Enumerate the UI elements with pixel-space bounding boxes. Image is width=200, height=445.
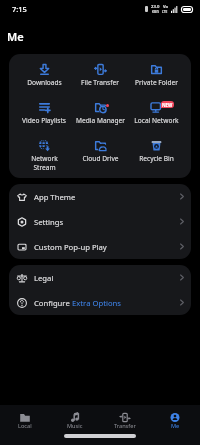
button[interactable]: Legal	[9, 265, 191, 290]
button[interactable]: Transfer	[100, 405, 150, 430]
button[interactable]: Video Playlists	[16, 102, 72, 140]
staticText: Transfer	[114, 422, 136, 430]
staticText: Cloud Drive	[82, 154, 119, 163]
button[interactable]: Downloads	[16, 64, 72, 102]
staticText: Downloads	[27, 78, 62, 87]
staticText: Vo	[163, 4, 168, 10]
staticText: Custom Pop-up Play	[34, 242, 107, 252]
staticText: LTE	[162, 10, 168, 14]
staticText: 7:15	[12, 4, 27, 14]
button[interactable]: Configure	[9, 290, 191, 315]
staticText: Legal	[34, 273, 54, 283]
staticText: Local	[18, 422, 32, 430]
staticText: App Theme	[34, 192, 76, 202]
button[interactable]: Recycle Bin	[128, 140, 184, 178]
button[interactable]: Music	[50, 405, 100, 430]
staticText: Extra Options	[72, 298, 122, 308]
staticText: Settings	[34, 217, 64, 227]
staticText: File Transfer	[81, 78, 119, 87]
staticText: 23.0	[151, 4, 160, 10]
staticText: Network Stream	[31, 154, 58, 171]
staticText: Media Manager	[76, 116, 125, 125]
staticText: Me	[7, 29, 24, 44]
staticText: Configure	[34, 298, 72, 308]
staticText: NEW	[162, 102, 173, 108]
button[interactable]: Custom Pop-up Play	[9, 234, 191, 259]
button[interactable]: Private Folder	[128, 64, 184, 102]
staticText: Recycle Bin	[139, 154, 174, 163]
staticText: Private Folder	[135, 78, 178, 87]
button[interactable]: NEW	[128, 102, 184, 140]
button[interactable]: Media Manager	[72, 102, 128, 140]
button[interactable]: App Theme	[9, 184, 191, 209]
button[interactable]: File Transfer	[72, 64, 128, 102]
button[interactable]: Network Stream	[16, 140, 72, 178]
button[interactable]: Settings	[9, 209, 191, 234]
button[interactable]: Cloud Drive	[72, 140, 128, 178]
button[interactable]: Local	[0, 405, 50, 430]
staticText: KB/S	[152, 10, 159, 14]
staticText: Local Network	[134, 116, 179, 125]
staticText: Music	[67, 422, 83, 430]
staticText: Video Playlists	[22, 116, 66, 125]
button[interactable]: Me	[150, 405, 200, 430]
staticText: Me	[171, 422, 180, 430]
